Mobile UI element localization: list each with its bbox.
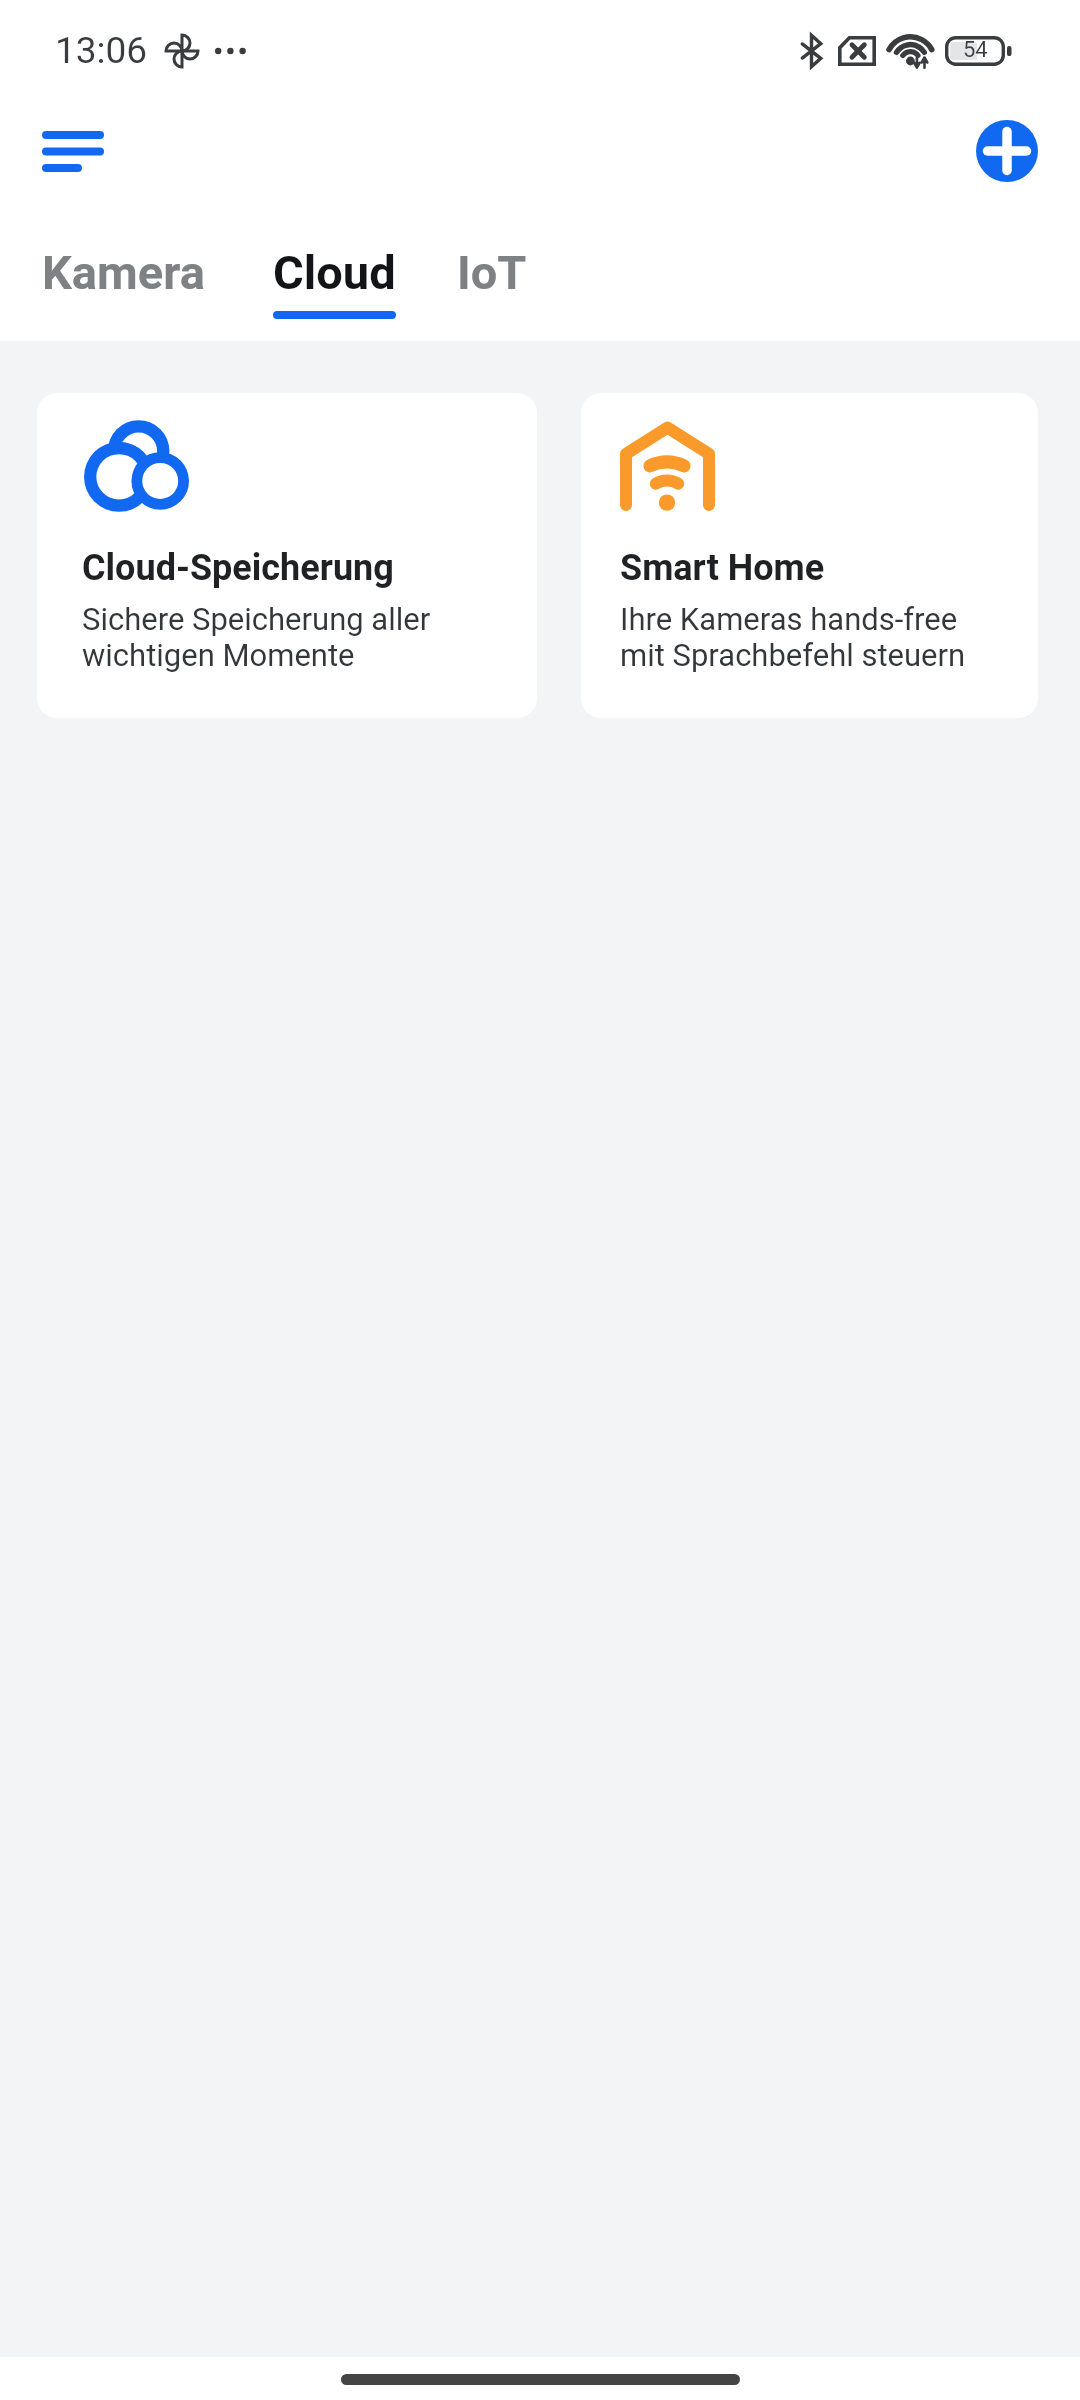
- staticText: Ihre Kameras hands-free mit Sprachbefehl…: [620, 601, 998, 674]
- staticText: 13:06: [55, 29, 148, 72]
- staticText: Cloud-Speicherung: [82, 547, 394, 589]
- button[interactable]: Add device: [976, 120, 1038, 182]
- button[interactable]: Cloud: [273, 202, 396, 319]
- button[interactable]: Smart Home: [581, 393, 1038, 718]
- button[interactable]: Kamera: [42, 202, 205, 319]
- staticText: Sichere Speicherung aller wichtigen Mome…: [82, 601, 529, 674]
- button[interactable]: Cloud-Speicherung: [37, 393, 537, 718]
- staticText: Cloud: [273, 245, 396, 300]
- staticText: Kamera: [42, 245, 205, 300]
- staticText: Smart Home: [620, 547, 825, 589]
- staticText: 54: [963, 37, 988, 63]
- staticText: IoT: [457, 245, 527, 300]
- button[interactable]: IoT: [457, 202, 527, 319]
- button[interactable]: Open navigation menu: [30, 108, 116, 194]
